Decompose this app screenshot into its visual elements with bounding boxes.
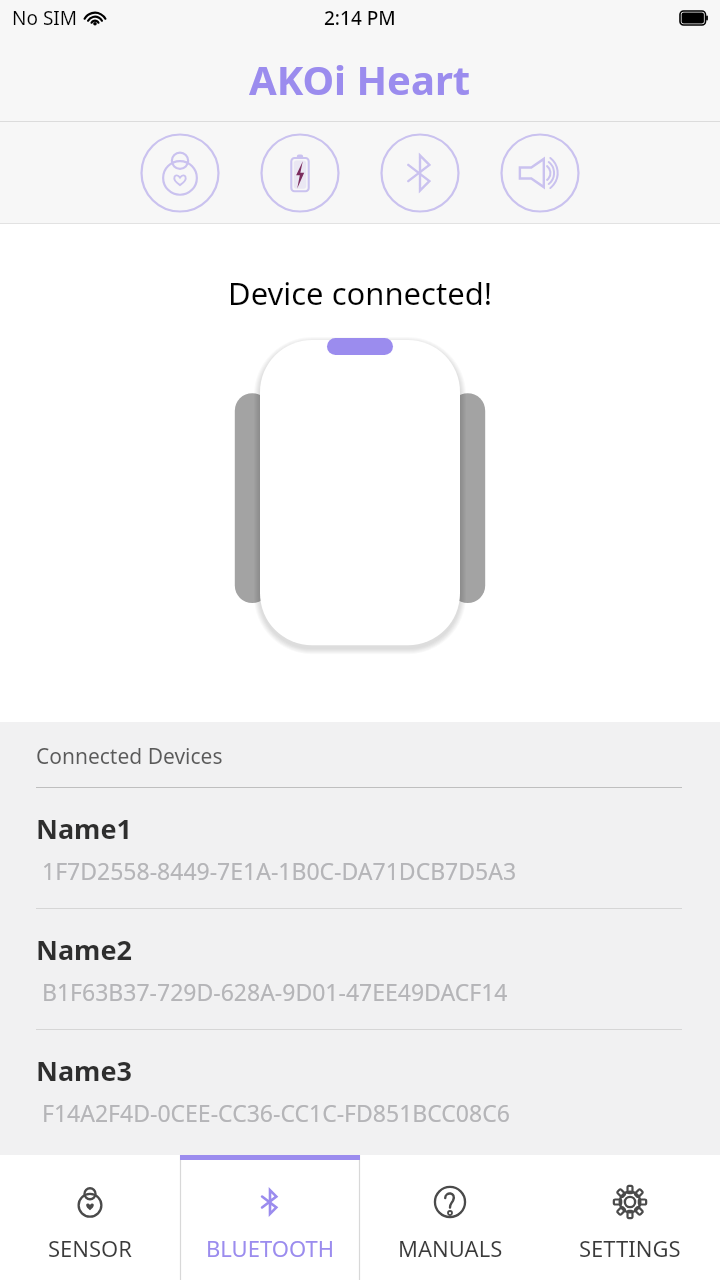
staticText: MANUALS <box>398 1233 503 1263</box>
button[interactable]: BLUETOOTH <box>180 1155 360 1280</box>
button[interactable]: Battery <box>260 133 340 213</box>
staticText: 2:14 PM <box>324 5 396 31</box>
button[interactable]: MANUALS <box>360 1155 540 1280</box>
button[interactable]: SENSOR <box>0 1155 180 1280</box>
staticText: AKOi Heart <box>249 52 471 106</box>
staticText: SETTINGS <box>579 1233 681 1263</box>
staticText: Name2 <box>36 931 133 968</box>
staticText: No SIM <box>12 5 77 31</box>
button[interactable]: Name3 <box>0 1030 720 1150</box>
button[interactable]: Name2 <box>0 909 720 1029</box>
button[interactable]: Volume <box>500 133 580 213</box>
staticText: Name1 <box>36 810 133 847</box>
staticText: SENSOR <box>48 1233 132 1263</box>
staticText: Device connected! <box>228 272 493 314</box>
staticText: Name3 <box>36 1052 133 1089</box>
staticText: F14A2F4D-0CEE-CC36-CC1C-FD851BCC08C6 <box>42 1097 510 1128</box>
staticText: 1F7D2558-8449-7E1A-1B0C-DA71DCB7D5A3 <box>42 855 517 886</box>
staticText: B1F63B37-729D-628A-9D01-47EE49DACF14 <box>42 976 508 1007</box>
staticText: Connected Devices <box>36 742 223 771</box>
button[interactable]: SETTINGS <box>540 1155 720 1280</box>
button[interactable]: Name1 <box>0 788 720 908</box>
staticText: BLUETOOTH <box>206 1233 334 1263</box>
button[interactable]: Bluetooth <box>380 133 460 213</box>
button[interactable]: Baby sensor <box>140 133 220 213</box>
